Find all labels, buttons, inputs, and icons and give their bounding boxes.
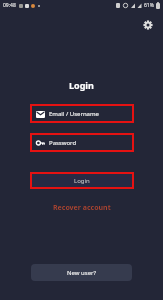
staticText: Login	[69, 79, 94, 91]
staticText: New user?	[67, 269, 97, 277]
button[interactable]	[140, 17, 156, 33]
staticText: Password	[49, 139, 77, 147]
staticText: Email / Username	[49, 110, 99, 118]
staticText: 09:48	[3, 2, 16, 9]
staticText: 61%	[144, 2, 154, 9]
staticText: Login	[74, 177, 90, 185]
button[interactable]: Recover account	[53, 203, 111, 213]
button[interactable]: New user?	[31, 264, 132, 281]
button[interactable]: Login	[30, 172, 134, 189]
button[interactable]: Password	[30, 133, 134, 152]
button[interactable]: Email / Username	[30, 104, 134, 123]
